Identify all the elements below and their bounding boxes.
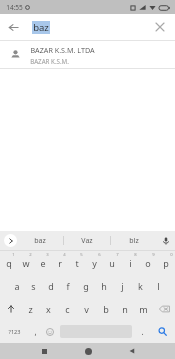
staticText: 14:55 (6, 3, 23, 12)
staticText: 8 (134, 252, 137, 258)
button[interactable]: Search (150, 320, 175, 343)
staticText: 3 (46, 252, 49, 258)
staticText: 1 (12, 252, 15, 258)
staticText: y (92, 257, 97, 269)
staticText: k (138, 280, 143, 292)
button[interactable]: e (34, 251, 51, 274)
staticText: j (121, 280, 124, 292)
staticText: h (101, 280, 107, 292)
staticText: n (122, 303, 128, 315)
button[interactable]: Recents (22, 343, 66, 359)
staticText: t (75, 257, 79, 269)
staticText: v (84, 303, 89, 315)
button[interactable]: z (21, 297, 39, 320)
button[interactable]: a (8, 274, 25, 297)
button[interactable]: x (39, 297, 58, 320)
button[interactable]: ?123 (0, 320, 28, 343)
button[interactable]: baz (32, 21, 147, 34)
button[interactable]: n (115, 297, 134, 320)
button[interactable]: More suggestions (4, 234, 17, 247)
button[interactable]: Emoji (42, 320, 58, 343)
button[interactable]: k (131, 274, 149, 297)
staticText: BAZAR K.S.M. (30, 57, 69, 65)
staticText: l (157, 280, 160, 292)
staticText: s (31, 280, 36, 292)
button[interactable]: Back (0, 14, 26, 40)
staticText: b (103, 303, 109, 315)
button[interactable]: u (103, 251, 121, 274)
button[interactable]: , (28, 320, 42, 343)
button[interactable]: t (68, 251, 85, 274)
button[interactable]: y (85, 251, 103, 274)
staticText: p (163, 257, 169, 269)
button[interactable]: q (0, 251, 17, 274)
button[interactable]: c (58, 297, 77, 320)
staticText: a (14, 280, 20, 292)
staticText: baz (34, 236, 46, 246)
button[interactable]: Back (110, 343, 154, 359)
staticText: e (40, 257, 46, 269)
button[interactable]: o (139, 251, 157, 274)
button[interactable]: Backspace (153, 297, 175, 320)
button[interactable]: blz (111, 236, 157, 246)
staticText: Vaz (81, 236, 93, 246)
staticText: x (46, 303, 51, 315)
staticText: i (129, 257, 132, 269)
staticText: , (34, 326, 37, 337)
button[interactable]: r (51, 251, 68, 274)
button[interactable]: Vaz (64, 236, 110, 246)
staticText: BAZAR K.S.M. LTDA (30, 45, 95, 55)
button[interactable]: Shift (0, 297, 21, 320)
button[interactable]: v (77, 297, 96, 320)
button[interactable]: . (134, 320, 150, 343)
staticText: g (83, 280, 89, 292)
button[interactable]: h (95, 274, 113, 297)
staticText: 2 (29, 252, 32, 258)
staticText: d (48, 280, 54, 292)
button[interactable]: m (134, 297, 153, 320)
button[interactable]: Home (66, 343, 110, 359)
staticText: o (145, 257, 151, 269)
button[interactable]: Voice input (157, 237, 175, 245)
staticText: . (141, 326, 144, 337)
staticText: ?123 (8, 328, 21, 336)
staticText: m (139, 303, 148, 315)
button[interactable]: d (42, 274, 59, 297)
button[interactable]: BAZAR K.S.M. LTDA (0, 41, 175, 68)
staticText: 5 (80, 252, 83, 258)
staticText: u (109, 257, 115, 269)
button[interactable]: i (121, 251, 139, 274)
staticText: w (22, 257, 30, 269)
staticText: 7 (116, 252, 119, 258)
button[interactable]: w (17, 251, 34, 274)
button[interactable]: g (77, 274, 95, 297)
staticText: blz (129, 236, 139, 246)
button[interactable]: b (96, 297, 115, 320)
staticText: baz (33, 21, 49, 34)
staticText: 0 (170, 252, 173, 258)
staticText: q (6, 257, 12, 269)
staticText: 9 (152, 252, 155, 258)
button[interactable]: j (113, 274, 131, 297)
button[interactable]: f (59, 274, 77, 297)
button[interactable]: Clear (147, 14, 173, 40)
staticText: 6 (98, 252, 101, 258)
staticText: z (28, 303, 33, 315)
button[interactable]: p (157, 251, 175, 274)
button[interactable]: s (25, 274, 42, 297)
staticText: c (65, 303, 70, 315)
button[interactable]: baz (17, 236, 63, 246)
staticText: 4 (63, 252, 66, 258)
button[interactable]: l (149, 274, 167, 297)
staticText: f (66, 280, 70, 292)
staticText: r (58, 257, 62, 269)
